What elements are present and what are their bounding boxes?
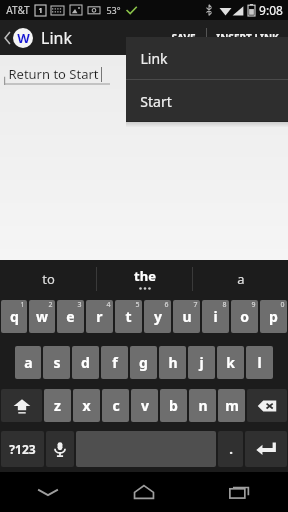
button[interactable]: Up, Link	[0, 20, 78, 55]
staticText: 53°	[106, 4, 121, 16]
staticText: Return to Start	[8, 65, 99, 83]
button[interactable]: Start	[126, 80, 288, 122]
button[interactable]: x	[73, 389, 100, 422]
button[interactable]: Home	[96, 472, 192, 512]
button[interactable]: p	[260, 300, 287, 333]
staticText: u	[182, 307, 192, 326]
button[interactable]: y	[144, 300, 171, 333]
staticText: ?123	[9, 441, 36, 457]
staticText: Link	[41, 27, 72, 49]
button[interactable]: a	[15, 346, 41, 379]
button[interactable]: o	[231, 300, 258, 333]
staticText: 2	[48, 300, 53, 310]
staticText: y	[154, 307, 162, 326]
staticText: 6	[164, 300, 169, 310]
staticText: INSERT LINK	[216, 31, 279, 45]
button[interactable]: v	[131, 389, 158, 422]
staticText: 5	[135, 300, 140, 310]
staticText: r	[96, 307, 103, 326]
staticText: to	[42, 270, 55, 288]
staticText: c	[112, 396, 120, 415]
staticText: the	[134, 267, 156, 285]
button[interactable]: to	[0, 260, 96, 297]
staticText: p	[269, 307, 278, 326]
staticText: 0	[280, 300, 285, 310]
staticText: 4	[106, 300, 111, 310]
staticText: 9:08	[259, 2, 283, 18]
staticText: AT&T	[6, 3, 30, 17]
button[interactable]: c	[102, 389, 129, 422]
button[interactable]: g	[130, 346, 157, 379]
staticText: 9	[251, 300, 256, 310]
button[interactable]: Link	[126, 37, 288, 79]
button[interactable]: the	[97, 260, 192, 297]
button[interactable]: q	[1, 300, 27, 333]
button[interactable]: Shift	[1, 389, 42, 422]
button[interactable]: Backspace	[247, 389, 287, 422]
staticText: z	[54, 396, 61, 415]
button[interactable]: j	[188, 346, 215, 379]
staticText: h	[168, 353, 178, 372]
button[interactable]: ?123	[1, 431, 44, 467]
staticText: SAVE	[171, 31, 196, 45]
staticText: a	[237, 270, 245, 288]
staticText: s	[53, 353, 61, 372]
button[interactable]: i	[202, 300, 229, 333]
staticText: .	[229, 440, 233, 458]
staticText: 3	[77, 300, 82, 310]
button[interactable]: z	[44, 389, 71, 422]
staticText: v	[141, 396, 149, 415]
staticText: o	[240, 307, 249, 326]
button[interactable]: n	[189, 389, 216, 422]
button[interactable]: INSERT LINK	[207, 20, 288, 55]
staticText: Start	[140, 92, 172, 111]
staticText: g	[139, 353, 148, 372]
button[interactable]: m	[218, 389, 245, 422]
button[interactable]: SAVE	[161, 20, 206, 55]
button[interactable]: s	[43, 346, 70, 379]
staticText: x	[82, 396, 91, 415]
staticText: m	[225, 396, 239, 415]
staticText: 8	[222, 300, 227, 310]
staticText: 1	[38, 6, 43, 16]
button[interactable]: e	[57, 300, 84, 333]
staticText: w	[36, 307, 48, 326]
staticText: j	[199, 353, 204, 372]
staticText: i	[213, 307, 218, 326]
staticText: n	[198, 396, 208, 415]
staticText: a	[24, 353, 33, 372]
button[interactable]: h	[159, 346, 186, 379]
staticText: l	[257, 353, 262, 372]
button[interactable]: Hide keyboard	[0, 472, 96, 512]
button[interactable]: w	[29, 300, 55, 333]
staticText: f	[112, 353, 118, 372]
button[interactable]: d	[72, 346, 99, 379]
staticText: q	[10, 307, 19, 326]
button[interactable]: a	[193, 260, 288, 297]
staticText: t	[125, 307, 132, 326]
staticText: b	[169, 396, 178, 415]
button[interactable]: Recent apps	[192, 472, 288, 512]
button[interactable]: f	[101, 346, 128, 379]
staticText: k	[226, 353, 235, 372]
button[interactable]: .	[218, 431, 243, 467]
button[interactable]: Enter	[245, 431, 287, 467]
staticText: 1	[20, 300, 25, 310]
button[interactable]: Voice input	[46, 431, 74, 467]
staticText: Link	[140, 49, 168, 68]
staticText: 7	[193, 300, 198, 310]
button[interactable]: u	[173, 300, 200, 333]
button[interactable]: t	[115, 300, 142, 333]
staticText: e	[66, 307, 75, 326]
button[interactable]: r	[86, 300, 113, 333]
button[interactable]: l	[246, 346, 273, 379]
staticText: d	[81, 353, 90, 372]
button[interactable]: b	[160, 389, 187, 422]
button[interactable]: k	[217, 346, 244, 379]
staticText: W	[17, 29, 30, 47]
